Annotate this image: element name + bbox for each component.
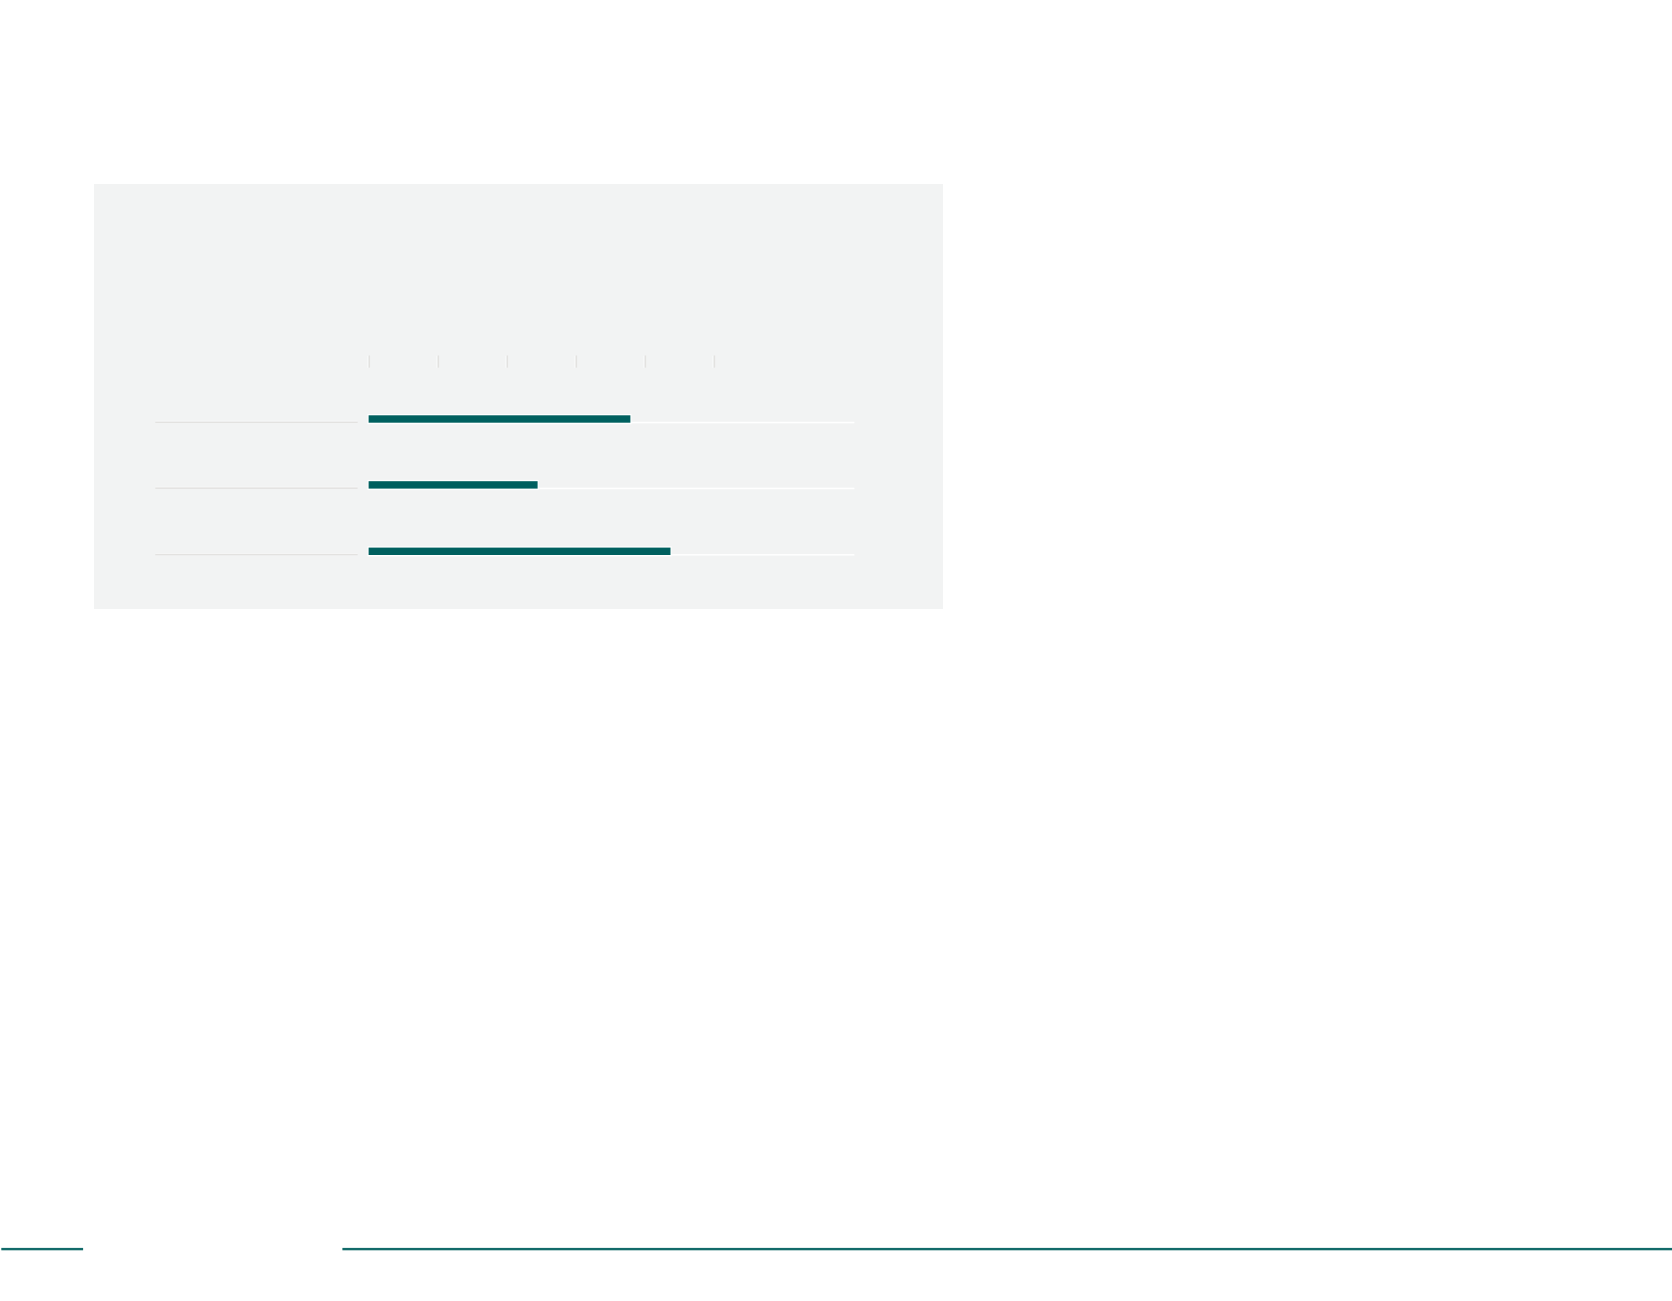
button[interactable]: Bar 1 of 3 xyxy=(94,361,943,427)
button[interactable]: Bar 3 of 3 xyxy=(94,493,943,559)
button[interactable]: Bar 2 of 3 xyxy=(94,426,943,492)
